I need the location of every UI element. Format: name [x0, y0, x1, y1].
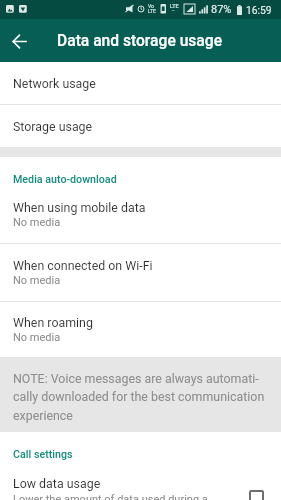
button[interactable]: Low data usage	[0, 461, 281, 500]
staticText: Call settings	[13, 448, 73, 461]
staticText: Media auto-download	[13, 173, 117, 186]
staticText: Vo LTE	[148, 3, 156, 14]
staticText: No media	[13, 274, 61, 287]
button[interactable]: Storage usage	[0, 105, 281, 147]
button[interactable]: Back	[0, 22, 38, 60]
staticText: No media	[13, 331, 61, 344]
staticText: When using mobile data	[13, 200, 146, 215]
button[interactable]: When roaming	[0, 302, 281, 357]
button[interactable]: When connected on Wi-Fi	[0, 244, 281, 301]
staticText: Low data usage	[13, 476, 101, 491]
staticText: Storage usage	[13, 119, 93, 134]
staticText: LTE	[170, 3, 179, 9]
staticText: When connected on Wi-Fi	[13, 258, 153, 273]
staticText: NOTE: Voice messages are always automati…	[13, 371, 265, 423]
staticText: No media	[13, 216, 61, 229]
staticText: 87%	[211, 3, 232, 16]
staticText: 16:59	[246, 4, 272, 16]
button[interactable]: Network usage	[0, 62, 281, 104]
staticText: Data and storage usage	[57, 32, 223, 50]
staticText: Network usage	[13, 76, 96, 91]
staticText: Lower the amount of data used during a	[13, 493, 208, 500]
staticText: When roaming	[13, 315, 93, 330]
button[interactable]: When using mobile data	[0, 186, 281, 243]
staticText: ··	[172, 7, 175, 13]
